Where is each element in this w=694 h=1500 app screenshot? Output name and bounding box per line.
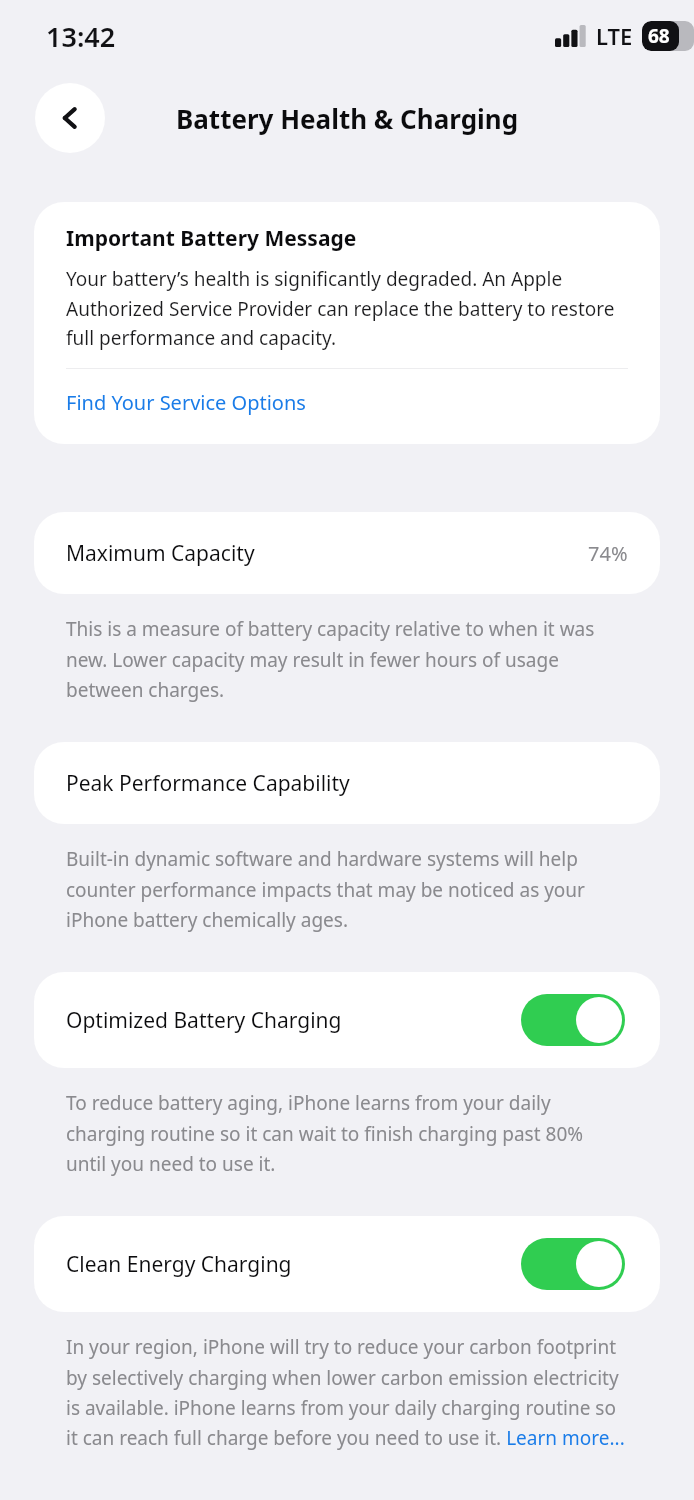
button[interactable]: Toggle on — [521, 994, 625, 1046]
button[interactable]: Clean Energy Charging — [34, 1216, 660, 1312]
staticText: In your region, iPhone will try to reduc… — [66, 1334, 628, 1450]
staticText: Your battery’s health is significantly d… — [66, 266, 628, 350]
staticText: Find Your Service Options — [66, 389, 306, 416]
staticText: LTE — [596, 21, 633, 51]
staticText: Battery Health & Charging — [176, 101, 519, 136]
staticText: To reduce battery aging, iPhone learns f… — [66, 1090, 628, 1176]
staticText: This is a measure of battery capacity re… — [66, 616, 628, 702]
staticText: Peak Performance Capability — [66, 769, 350, 798]
staticText: 68 — [648, 23, 670, 49]
button[interactable]: Toggle on — [521, 1238, 625, 1290]
staticText: Optimized Battery Charging — [66, 1006, 342, 1035]
staticText: 74% — [588, 540, 628, 567]
button[interactable]: Find Your Service Options — [34, 369, 660, 436]
button[interactable]: Maximum Capacity — [34, 512, 660, 594]
button[interactable]: Back — [35, 83, 105, 153]
staticText: 13:42 — [46, 18, 116, 55]
staticText: Important Battery Message — [66, 224, 357, 253]
staticText: Clean Energy Charging — [66, 1250, 292, 1279]
staticText: Built-in dynamic software and hardware s… — [66, 846, 628, 932]
button[interactable]: Optimized Battery Charging — [34, 972, 660, 1068]
staticText: Maximum Capacity — [66, 539, 255, 568]
button[interactable]: Peak Performance Capability — [34, 742, 660, 824]
